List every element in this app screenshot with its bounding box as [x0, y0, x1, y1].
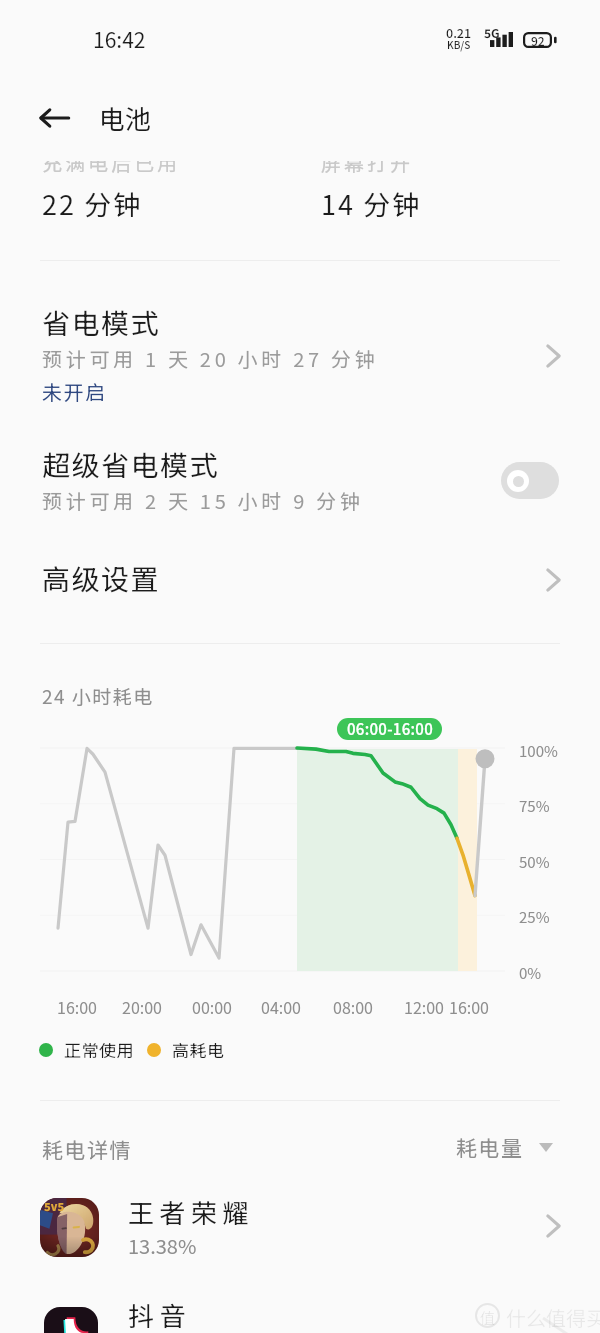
staticText: 电池 — [99, 99, 152, 137]
staticText: 高级设置 — [42, 558, 161, 599]
button[interactable]: 高级设置 — [0, 545, 600, 615]
button[interactable]: 超级省电模式开关 — [501, 462, 559, 499]
staticText: 14 分钟 — [321, 184, 422, 218]
staticText: 16:00 — [449, 995, 489, 1018]
staticText: 100% — [519, 740, 558, 762]
staticText: KB/S — [447, 37, 471, 51]
button[interactable]: 耗电量 — [452, 1128, 557, 1166]
staticText: 省电模式 — [42, 302, 161, 343]
staticText: 13.38% — [128, 1231, 197, 1260]
staticText: 高耗电 — [172, 1037, 225, 1062]
staticText: 充满电后已用 — [42, 161, 180, 177]
staticText: 5G — [484, 24, 500, 41]
staticText: 04:00 — [261, 995, 301, 1018]
staticText: 王者荣耀 — [128, 1193, 255, 1231]
staticText: 抖音 — [128, 1296, 192, 1333]
staticText: 预计可用 1 天 20 小时 27 分钟 — [42, 344, 379, 373]
button[interactable]: 抖音 — [0, 1293, 600, 1333]
button[interactable]: 5v5 — [0, 1190, 600, 1300]
staticText: 0.21 — [446, 23, 472, 41]
staticText: 22 分钟 — [42, 184, 143, 218]
staticText: 正常使用 — [64, 1037, 134, 1062]
staticText: 24 小时耗电 — [42, 682, 154, 710]
staticText: 16:42 — [93, 24, 146, 54]
staticText: 00:00 — [192, 995, 232, 1018]
staticText: 耗电详情 — [42, 1134, 132, 1164]
staticText: 5v5 — [44, 1198, 65, 1214]
staticText: 50% — [519, 851, 550, 873]
staticText: 25% — [519, 906, 550, 928]
staticText: 08:00 — [333, 995, 373, 1018]
button[interactable]: 超级省电模式 — [0, 432, 600, 532]
staticText: 超级省电模式 — [42, 444, 220, 485]
staticText: 预计可用 2 天 15 小时 9 分钟 — [42, 486, 364, 515]
button[interactable]: 返回 — [28, 92, 80, 144]
staticText: 06:00-16:00 — [347, 718, 433, 740]
button[interactable]: 省电模式 — [0, 285, 600, 420]
staticText: 耗电量 — [456, 1132, 524, 1162]
staticText: 12:00 — [404, 995, 444, 1018]
staticText: 92 — [531, 32, 545, 48]
staticText: 值 — [480, 1307, 496, 1329]
staticText: 75% — [519, 795, 550, 817]
staticText: 什么值得买 — [506, 1303, 600, 1332]
staticText: 未开启 — [42, 377, 107, 406]
staticText: 0% — [519, 962, 542, 984]
staticText: 屏幕打开 — [321, 161, 413, 177]
staticText: 20:00 — [122, 995, 162, 1018]
staticText: 16:00 — [57, 995, 97, 1018]
